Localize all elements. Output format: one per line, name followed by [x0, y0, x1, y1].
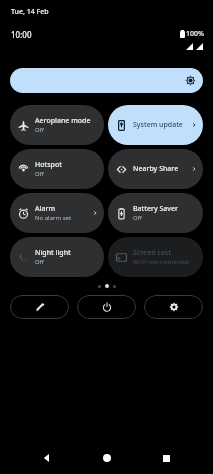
staticText: System update: [133, 120, 183, 130]
button[interactable]: Power: [77, 295, 136, 319]
button[interactable]: Recent apps: [153, 445, 179, 471]
staticText: Tue, 14 Feb: [11, 7, 49, 17]
staticText: Screen cast: [133, 248, 171, 258]
button[interactable]: Battery Saver: [108, 193, 203, 233]
button[interactable]: Edit: [10, 295, 69, 319]
staticText: Off: [35, 258, 44, 266]
button[interactable]: Screen cast: [108, 237, 203, 277]
staticText: Hotspot: [35, 160, 62, 170]
button[interactable]: Night light: [10, 237, 104, 277]
button[interactable]: Settings: [144, 295, 203, 319]
staticText: Battery Saver: [133, 204, 178, 214]
button[interactable]: System update: [108, 105, 203, 145]
button[interactable]: Home: [94, 445, 120, 471]
staticText: Night light: [35, 248, 71, 258]
button[interactable]: Nearby Share: [108, 149, 203, 189]
button[interactable]: Hotspot: [10, 149, 104, 189]
staticText: Wi-Fi not connected: [133, 258, 189, 266]
staticText: 100%: [186, 29, 204, 39]
staticText: Alarm: [35, 204, 56, 214]
button[interactable]: Back: [34, 445, 60, 471]
staticText: Off: [133, 214, 142, 222]
button[interactable]: Alarm: [10, 193, 104, 233]
staticText: Aeroplane mode: [35, 116, 91, 126]
staticText: No alarm set: [35, 214, 72, 222]
staticText: Off: [35, 170, 44, 178]
staticText: 10:00: [11, 29, 32, 40]
staticText: Off: [35, 126, 44, 134]
button[interactable]: Aeroplane mode: [10, 105, 104, 145]
staticText: Nearby Share: [133, 164, 179, 174]
button[interactable]: Brightness: [10, 68, 203, 93]
